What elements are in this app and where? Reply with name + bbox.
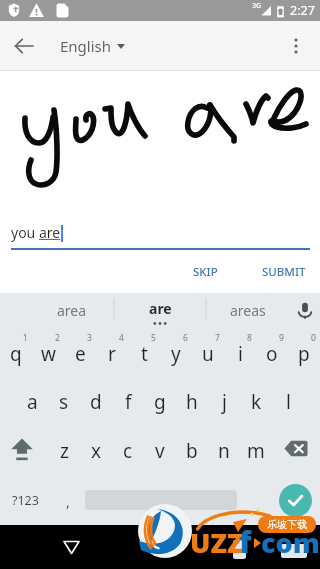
button[interactable]: s [48, 377, 80, 426]
button[interactable]: ?123 [0, 475, 50, 525]
button[interactable]: k [240, 377, 272, 426]
staticText: 2 [55, 332, 60, 344]
button[interactable]: English [48, 21, 133, 71]
staticText: UZZ [190, 524, 244, 561]
button[interactable]: m [240, 426, 272, 475]
staticText: areas [230, 301, 266, 320]
staticText: i [238, 341, 243, 367]
button[interactable]: are [114, 293, 206, 328]
button[interactable]: Hide keyboard [51, 527, 91, 567]
button[interactable]: area [0, 293, 114, 328]
button[interactable]: a [16, 377, 48, 426]
button[interactable]: areas [206, 293, 290, 328]
button[interactable]: g [144, 377, 176, 426]
staticText: d [90, 389, 102, 415]
staticText: b [186, 438, 198, 464]
staticText: SUBMIT [262, 264, 306, 280]
staticText: com [261, 524, 320, 561]
button[interactable]: d [80, 377, 112, 426]
staticText: are [149, 299, 172, 318]
button[interactable]: SKIP [179, 258, 232, 286]
staticText: 4 [119, 332, 124, 344]
button[interactable]: u [192, 328, 224, 377]
button[interactable]: n [208, 426, 240, 475]
staticText: you [11, 223, 39, 242]
staticText: are [39, 223, 61, 242]
button[interactable]: y [160, 328, 192, 377]
button[interactable]: h [176, 377, 208, 426]
staticText: 3 [87, 332, 92, 344]
staticText: 3G [252, 1, 262, 11]
staticText: e [75, 341, 86, 367]
button[interactable]: v [144, 426, 176, 475]
staticText: y [171, 341, 181, 367]
button[interactable]: o [256, 328, 288, 377]
staticText: w [41, 341, 56, 367]
staticText: 0 [311, 332, 316, 344]
button[interactable]: Shift [0, 426, 48, 475]
button[interactable]: i [224, 328, 256, 377]
staticText: g [154, 389, 166, 415]
button[interactable]: Backspace [272, 426, 320, 475]
button[interactable]: Enter [279, 484, 312, 517]
staticText: p [298, 341, 310, 367]
staticText: English [60, 36, 112, 56]
staticText: 8 [247, 332, 252, 344]
staticText: q [10, 341, 22, 367]
staticText: 5 [151, 332, 156, 344]
staticText: r [108, 341, 116, 367]
button[interactable]: x [80, 426, 112, 475]
button[interactable]: SUBMIT [248, 258, 320, 286]
staticText: 2:27 [290, 2, 315, 19]
staticText: v [155, 438, 165, 464]
button[interactable]: t [128, 328, 160, 377]
button[interactable]: z [48, 426, 80, 475]
staticText: c [123, 438, 133, 464]
button[interactable]: e [64, 328, 96, 377]
button[interactable]: f [112, 377, 144, 426]
button[interactable]: q [0, 328, 32, 377]
button[interactable]: b [176, 426, 208, 475]
staticText: 7 [215, 332, 220, 344]
button[interactable]: p [288, 328, 320, 377]
button[interactable]: , [50, 475, 85, 525]
staticText: t [141, 341, 148, 367]
staticText: 9 [279, 332, 284, 344]
staticText: 乐坡下载 [267, 518, 307, 531]
staticText: f [239, 521, 252, 562]
staticText: u [202, 341, 214, 367]
staticText: f [125, 389, 132, 415]
staticText: j [222, 389, 227, 415]
staticText: m [247, 438, 265, 464]
button[interactable]: Space [85, 490, 237, 510]
staticText: ?123 [12, 492, 39, 509]
staticText: k [251, 389, 262, 415]
staticText: a [27, 389, 38, 415]
staticText: o [266, 341, 278, 367]
button[interactable]: r [96, 328, 128, 377]
staticText: SKIP [193, 264, 218, 280]
button[interactable]: c [112, 426, 144, 475]
staticText: , [66, 492, 70, 511]
button[interactable]: More options [272, 22, 320, 70]
staticText: x [91, 438, 102, 464]
button[interactable]: w [32, 328, 64, 377]
staticText: l [286, 389, 291, 415]
staticText: n [218, 438, 230, 464]
staticText: s [59, 389, 69, 415]
staticText: 6 [183, 332, 188, 344]
staticText: h [186, 389, 198, 415]
button[interactable]: l [272, 377, 304, 426]
button[interactable]: Voice input [290, 293, 320, 328]
button[interactable]: j [208, 377, 240, 426]
staticText: area [57, 301, 87, 320]
staticText: z [60, 438, 69, 464]
button[interactable]: Back [0, 22, 48, 70]
staticText: 1 [23, 332, 28, 344]
